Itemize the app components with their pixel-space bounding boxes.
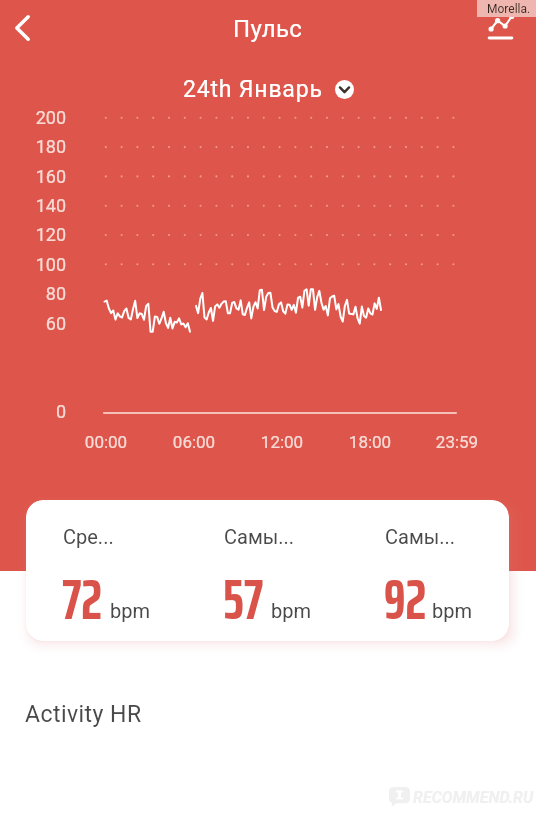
- staticText: 57: [223, 557, 264, 641]
- staticText: Самы...: [224, 525, 295, 548]
- staticText: bpm: [432, 599, 472, 622]
- staticText: 12:00: [237, 432, 327, 452]
- staticText: 06:00: [149, 432, 239, 452]
- button[interactable]: Сре...: [26, 500, 187, 641]
- staticText: bpm: [271, 599, 311, 622]
- staticText: 180: [6, 136, 66, 157]
- staticText: 00:00: [61, 432, 151, 452]
- staticText: 18:00: [325, 432, 415, 452]
- staticText: RECOMMEND.RU: [413, 788, 534, 807]
- button[interactable]: Самы...: [187, 500, 348, 641]
- staticText: 92: [384, 557, 427, 641]
- staticText: Пульс: [233, 15, 303, 43]
- staticText: 140: [6, 195, 66, 216]
- staticText: Activity HR: [25, 701, 142, 728]
- button[interactable]: 24th Январь: [183, 76, 354, 103]
- staticText: 200: [6, 107, 66, 128]
- staticText: Сре...: [63, 525, 114, 548]
- staticText: Самы...: [385, 525, 456, 548]
- staticText: 60: [6, 313, 66, 334]
- button[interactable]: Back: [0, 1, 50, 51]
- staticText: 160: [6, 166, 66, 187]
- staticText: 120: [6, 224, 66, 245]
- staticText: 80: [6, 283, 66, 304]
- staticText: 72: [62, 557, 103, 641]
- staticText: 23:59: [412, 432, 502, 452]
- staticText: 100: [6, 254, 66, 275]
- staticText: Morella.: [487, 2, 531, 16]
- button[interactable]: Самы...: [348, 500, 509, 641]
- staticText: bpm: [110, 599, 150, 622]
- staticText: 0: [6, 401, 66, 422]
- button[interactable]: Statistics: [476, 1, 524, 49]
- staticText: 24th Январь: [183, 76, 323, 103]
